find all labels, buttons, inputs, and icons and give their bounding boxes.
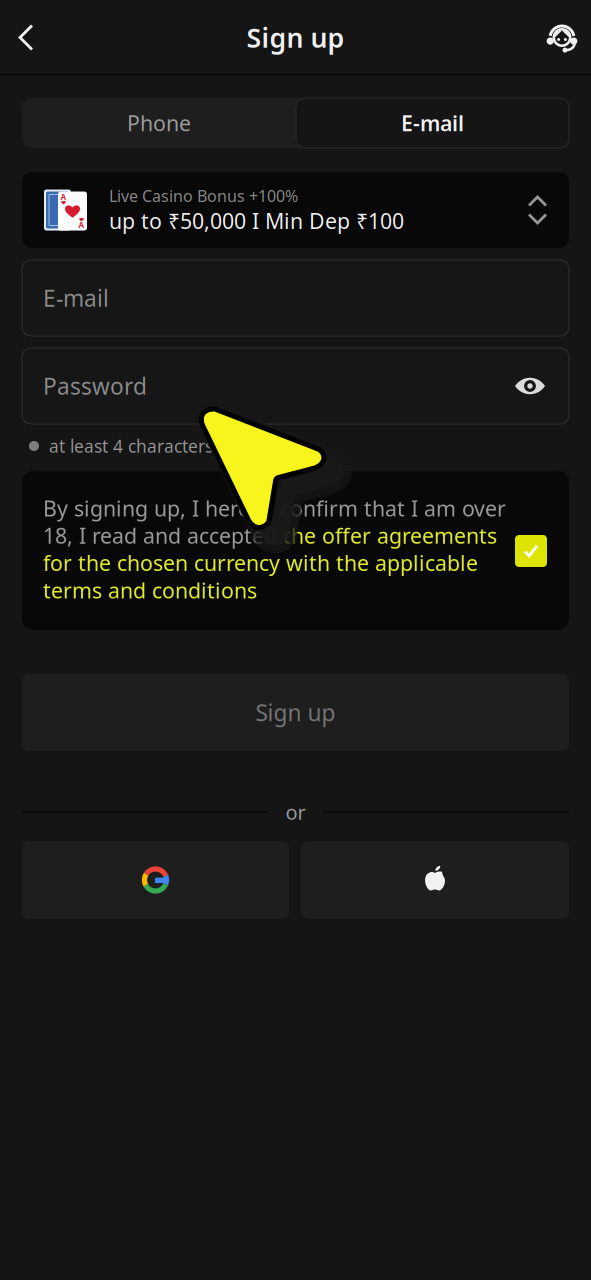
staticText: A [78, 220, 84, 230]
button[interactable]: Support [533, 0, 591, 74]
button[interactable]: Back [0, 0, 54, 74]
button[interactable]: Phone [22, 98, 296, 148]
staticText: Phone [127, 109, 191, 137]
staticText: the offer agreements [283, 521, 497, 550]
button[interactable]: Sign up with Apple [301, 841, 569, 919]
staticText: Sign up [255, 697, 335, 727]
staticText: or [285, 799, 305, 825]
staticText: Password [43, 371, 147, 401]
button[interactable]: Sign up with Google [22, 841, 289, 919]
staticText: A [60, 192, 66, 202]
button[interactable]: Show password [499, 355, 561, 417]
staticText: E-mail [401, 109, 464, 137]
staticText: at least 4 characters [49, 434, 213, 457]
staticText: 18, I read and accepted [43, 521, 283, 550]
staticText: terms and conditions [43, 576, 257, 604]
staticText: Live Casino Bonus +100% [109, 185, 298, 206]
staticText: Sign up [246, 20, 344, 55]
button[interactable]: By signing up, I hereby confirm that I a… [22, 471, 569, 630]
staticText: for the chosen currency with the applica… [43, 549, 478, 577]
button[interactable]: A [22, 172, 569, 248]
staticText: up to ₹50,000 I Min Dep ₹100 [109, 206, 404, 235]
staticText: By signing up, I hereby confirm that I a… [43, 494, 506, 522]
staticText: E-mail [43, 283, 109, 313]
button[interactable]: Sign up [22, 674, 569, 751]
button[interactable]: E-mail [296, 98, 569, 148]
button[interactable]: E-mail [22, 260, 569, 336]
